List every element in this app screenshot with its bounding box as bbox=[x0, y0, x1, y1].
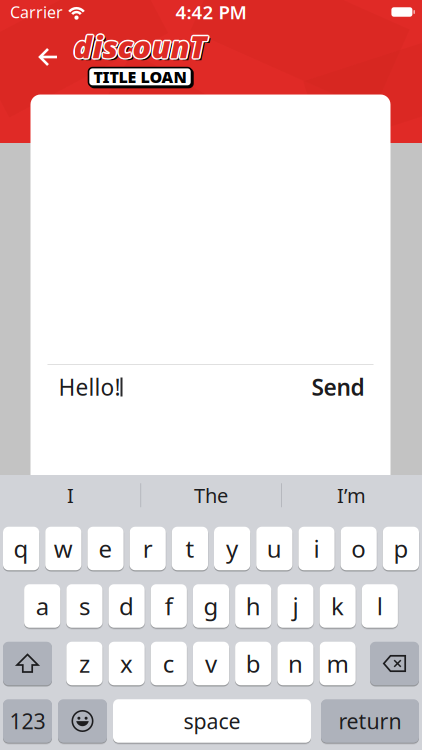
staticText: r bbox=[143, 533, 153, 564]
button[interactable]: Hello! bbox=[58, 372, 311, 402]
button[interactable]: w bbox=[45, 527, 81, 570]
staticText: d bbox=[119, 590, 134, 622]
button[interactable] bbox=[370, 642, 419, 685]
staticText: u bbox=[267, 533, 282, 564]
button[interactable]: I’m bbox=[281, 474, 422, 516]
button[interactable]: s bbox=[66, 584, 102, 628]
staticText: 123 bbox=[9, 707, 45, 735]
button[interactable]: k bbox=[319, 584, 356, 628]
button[interactable]: b bbox=[235, 642, 271, 685]
staticText: v bbox=[205, 648, 217, 679]
button[interactable]: t bbox=[172, 527, 208, 570]
staticText: return bbox=[338, 707, 401, 735]
button[interactable] bbox=[58, 699, 107, 743]
staticText: i bbox=[313, 533, 319, 564]
staticText: Hello! bbox=[58, 372, 120, 402]
button[interactable]: r bbox=[130, 527, 166, 570]
staticText: Carrier bbox=[10, 1, 63, 23]
button[interactable]: Send bbox=[311, 372, 364, 402]
staticText: discounT bbox=[74, 25, 207, 66]
button[interactable]: m bbox=[319, 642, 356, 685]
button[interactable]: n bbox=[277, 642, 313, 685]
staticText: s bbox=[79, 590, 90, 622]
staticText: a bbox=[36, 590, 49, 622]
staticText: discounT bbox=[73, 27, 206, 68]
button[interactable]: space bbox=[113, 699, 311, 743]
staticText: TITLE LOAN bbox=[93, 66, 186, 87]
button[interactable]: p bbox=[383, 527, 419, 570]
staticText: b bbox=[246, 648, 261, 679]
staticText: discounT bbox=[73, 24, 206, 65]
button[interactable]: g bbox=[193, 584, 229, 628]
staticText: The bbox=[194, 482, 228, 509]
staticText: p bbox=[393, 533, 408, 564]
button[interactable]: o bbox=[341, 527, 377, 570]
button[interactable]: x bbox=[108, 642, 145, 685]
staticText: discounT bbox=[73, 26, 206, 67]
staticText: t bbox=[185, 533, 194, 564]
staticText: discounT bbox=[75, 26, 208, 67]
button[interactable]: u bbox=[256, 527, 292, 570]
staticText: l bbox=[377, 590, 383, 622]
button[interactable]: I bbox=[0, 474, 141, 516]
button[interactable]: y bbox=[214, 527, 250, 570]
button[interactable]: i bbox=[298, 527, 335, 570]
staticText: j bbox=[292, 590, 298, 622]
button[interactable]: a bbox=[24, 584, 60, 628]
staticText: c bbox=[163, 648, 175, 679]
button[interactable]: j bbox=[277, 584, 313, 628]
button[interactable]: h bbox=[235, 584, 271, 628]
staticText: m bbox=[327, 648, 349, 679]
staticText: x bbox=[120, 648, 133, 679]
staticText: q bbox=[14, 533, 29, 564]
staticText: I’m bbox=[337, 482, 366, 509]
button[interactable]: f bbox=[151, 584, 187, 628]
staticText: discounT bbox=[72, 25, 205, 66]
staticText: k bbox=[331, 590, 344, 622]
staticText: o bbox=[351, 533, 366, 564]
button[interactable]: v bbox=[193, 642, 229, 685]
staticText: e bbox=[98, 533, 112, 564]
button[interactable]: z bbox=[66, 642, 102, 685]
button[interactable]: 123 bbox=[3, 699, 52, 743]
staticText: y bbox=[226, 533, 238, 564]
staticText: n bbox=[288, 648, 303, 679]
staticText: h bbox=[246, 590, 261, 622]
button[interactable] bbox=[26, 35, 70, 79]
staticText: discounT bbox=[72, 27, 205, 68]
staticText: z bbox=[79, 648, 90, 679]
button[interactable]: c bbox=[151, 642, 187, 685]
staticText: w bbox=[54, 533, 73, 564]
staticText: discounT bbox=[76, 28, 209, 69]
button[interactable]: l bbox=[362, 584, 398, 628]
button[interactable] bbox=[3, 642, 52, 685]
button[interactable]: e bbox=[87, 527, 124, 570]
staticText: f bbox=[165, 590, 173, 622]
staticText: discounT bbox=[72, 26, 205, 67]
staticText: Send bbox=[311, 372, 364, 402]
button[interactable]: discounT bbox=[73, 26, 206, 86]
button[interactable]: The bbox=[141, 474, 281, 516]
staticText: g bbox=[203, 590, 218, 622]
button[interactable]: return bbox=[321, 699, 419, 743]
staticText: space bbox=[183, 707, 240, 735]
button[interactable]: d bbox=[108, 584, 145, 628]
staticText: I bbox=[67, 482, 74, 509]
button[interactable]: q bbox=[3, 527, 39, 570]
staticText: 4:42 PM bbox=[175, 0, 246, 24]
staticText: discounT bbox=[74, 27, 207, 68]
